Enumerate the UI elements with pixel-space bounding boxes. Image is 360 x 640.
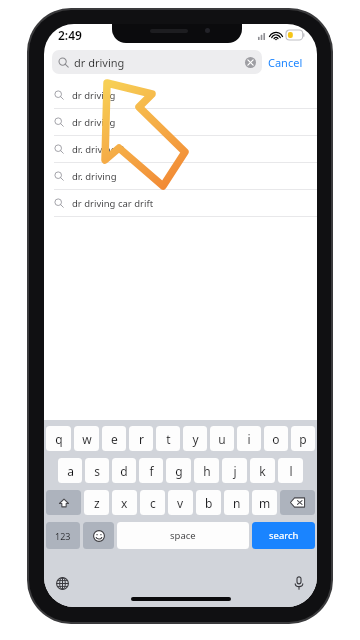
button[interactable]: l [278, 458, 303, 483]
button[interactable]: f [139, 458, 163, 483]
staticText: y [192, 431, 199, 447]
staticText: h [203, 463, 211, 479]
staticText: c [150, 495, 156, 511]
button[interactable]: w [74, 426, 99, 451]
button[interactable]: space [117, 522, 249, 549]
staticText: a [67, 463, 74, 479]
button[interactable]: m [252, 490, 277, 515]
staticText: p [299, 431, 307, 447]
button[interactable]: n [224, 490, 249, 515]
staticText: r [139, 431, 144, 447]
button[interactable]: dr. driving 2 [44, 136, 317, 162]
staticText: n [233, 495, 241, 511]
button[interactable]: dr driving car drift [44, 190, 317, 216]
staticText: space [170, 529, 196, 542]
button[interactable]: y [183, 426, 207, 451]
staticText: z [94, 495, 100, 511]
staticText: b [205, 495, 213, 511]
button[interactable]: r [129, 426, 153, 451]
button[interactable]: dr driving [44, 109, 317, 135]
staticText: Cancel [268, 55, 303, 70]
button[interactable]: e [102, 426, 126, 451]
staticText: d [120, 463, 128, 479]
button[interactable]: x [112, 490, 137, 515]
button[interactable]: s [85, 458, 109, 483]
button[interactable]: u [210, 426, 234, 451]
button[interactable]: g [166, 458, 191, 483]
staticText: dr. driving 2 [72, 143, 125, 156]
staticText: dr driving car drift [72, 197, 154, 210]
staticText: l [289, 463, 293, 479]
button[interactable]: k [250, 458, 275, 483]
button[interactable]: Dictation [289, 573, 309, 593]
button[interactable]: z [84, 490, 109, 515]
button[interactable]: h [194, 458, 219, 483]
staticText: g [175, 463, 183, 479]
button[interactable]: p [291, 426, 315, 451]
button[interactable]: v [168, 490, 193, 515]
staticText: m [259, 495, 271, 511]
button[interactable]: o [264, 426, 288, 451]
button[interactable]: j [222, 458, 247, 483]
button[interactable]: t [156, 426, 180, 451]
button[interactable]: b [196, 490, 221, 515]
staticText: f [149, 463, 154, 479]
button[interactable]: i [237, 426, 261, 451]
button[interactable]: dr. driving [44, 163, 317, 189]
button[interactable]: dr driving [44, 82, 317, 108]
staticText: dr driving [72, 116, 116, 129]
button[interactable]: Cancel [262, 52, 309, 73]
button[interactable]: Emoji [83, 522, 114, 549]
staticText: v [177, 495, 184, 511]
button[interactable]: Backspace [280, 490, 315, 515]
staticText: t [166, 431, 171, 447]
button[interactable]: 123 [46, 522, 80, 549]
button[interactable]: d [112, 458, 136, 483]
button[interactable]: Change keyboard language [52, 573, 72, 593]
button[interactable]: q [46, 426, 71, 451]
staticText: dr driving [74, 55, 125, 70]
button[interactable]: Clear text [244, 56, 256, 68]
button[interactable]: dr driving [52, 50, 262, 74]
staticText: j [233, 463, 237, 479]
staticText: s [94, 463, 100, 479]
staticText: u [218, 431, 226, 447]
staticText: 123 [55, 530, 71, 542]
staticText: dr. driving [72, 170, 117, 183]
staticText: w [82, 431, 92, 447]
staticText: e [111, 431, 118, 447]
button[interactable]: a [58, 458, 82, 483]
staticText: k [259, 463, 266, 479]
button[interactable]: search [252, 522, 315, 549]
staticText: o [272, 431, 280, 447]
staticText: 2:49 [58, 27, 82, 43]
button[interactable]: c [140, 490, 165, 515]
staticText: i [247, 431, 251, 447]
staticText: search [269, 529, 299, 542]
staticText: q [55, 431, 63, 447]
button[interactable]: Shift [46, 490, 81, 515]
staticText: dr driving [72, 89, 116, 102]
staticText: x [121, 495, 128, 511]
